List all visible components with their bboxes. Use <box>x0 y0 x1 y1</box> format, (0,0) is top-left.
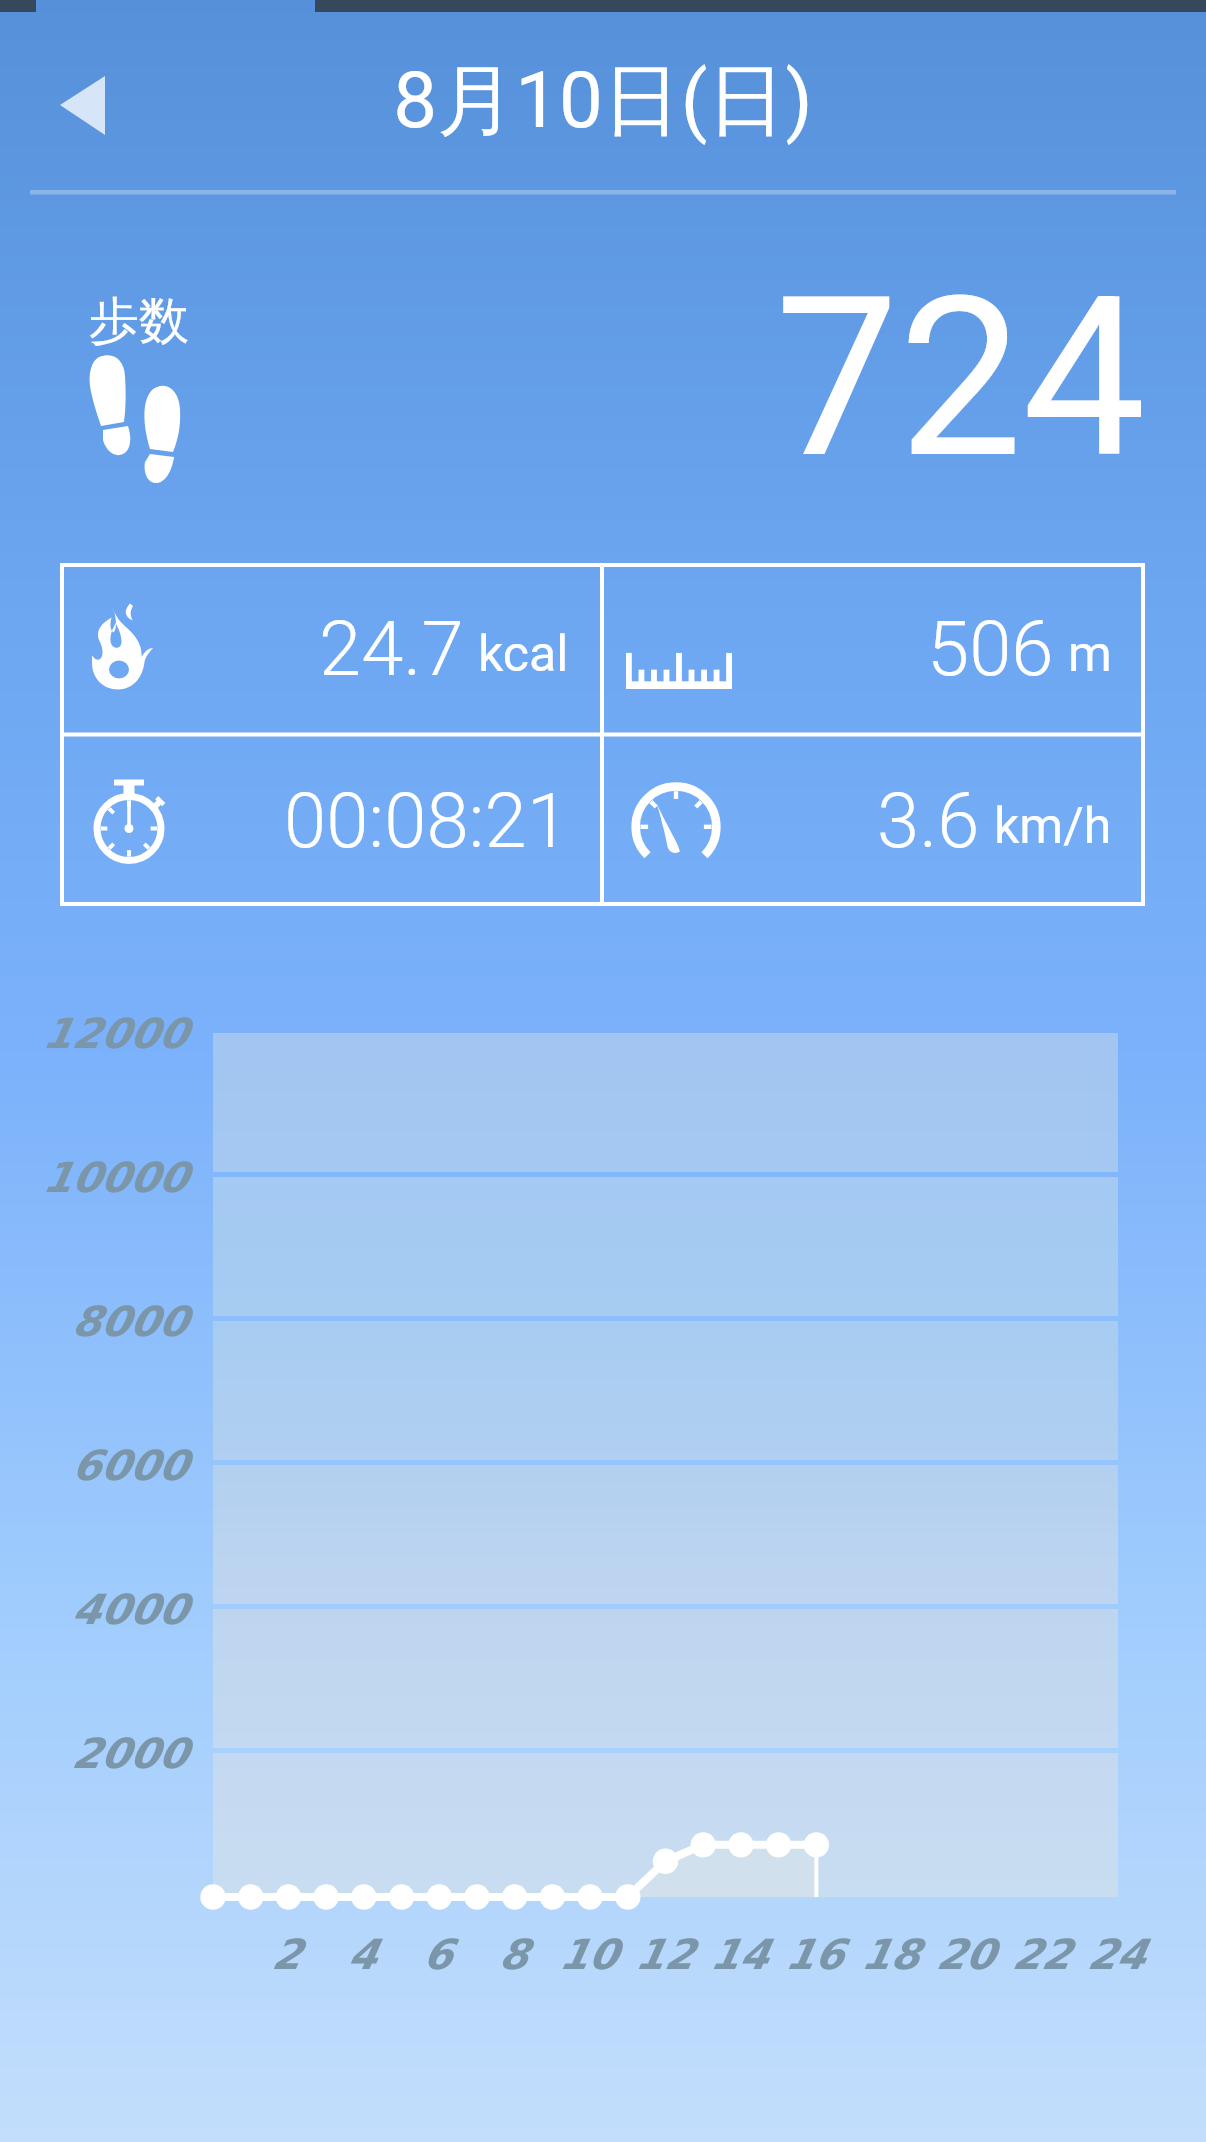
staticText: 6000 <box>0 1441 189 1489</box>
staticText: 4000 <box>0 1585 189 1633</box>
staticText: 8月10日(日) <box>0 52 1206 150</box>
button[interactable]: 00:08:21 <box>60 734 602 906</box>
staticText: 24 <box>1058 1930 1178 1978</box>
staticText: 歩数 <box>89 290 189 353</box>
staticText: 724 <box>0 250 1146 508</box>
staticText: kcal <box>478 625 569 684</box>
staticText: 3.6 <box>877 776 980 865</box>
staticText: 8 <box>455 1930 575 1978</box>
staticText: 00:08:21 <box>284 776 569 865</box>
button[interactable]: Back <box>20 48 130 163</box>
staticText: 506 <box>927 604 1054 693</box>
staticText: 22 <box>983 1930 1103 1978</box>
staticText: 16 <box>756 1930 876 1978</box>
staticText: 6 <box>379 1930 499 1978</box>
staticText: 12 <box>606 1930 726 1978</box>
staticText: 20 <box>907 1930 1027 1978</box>
staticText: 2 <box>228 1930 348 1978</box>
staticText: 8000 <box>0 1297 189 1345</box>
staticText: km/h <box>994 797 1112 856</box>
staticText: 12000 <box>0 1009 189 1057</box>
staticText: 4 <box>304 1930 424 1978</box>
staticText: 10000 <box>0 1153 189 1201</box>
staticText: 24.7 <box>319 604 464 693</box>
button[interactable]: 3.6 <box>602 734 1145 906</box>
staticText: m <box>1068 625 1112 684</box>
staticText: 10 <box>530 1930 650 1978</box>
button[interactable]: 24.7 <box>60 563 602 734</box>
staticText: 18 <box>832 1930 952 1978</box>
button[interactable]: 506 <box>602 563 1145 734</box>
staticText: 2000 <box>0 1729 189 1777</box>
staticText: 14 <box>681 1930 801 1978</box>
